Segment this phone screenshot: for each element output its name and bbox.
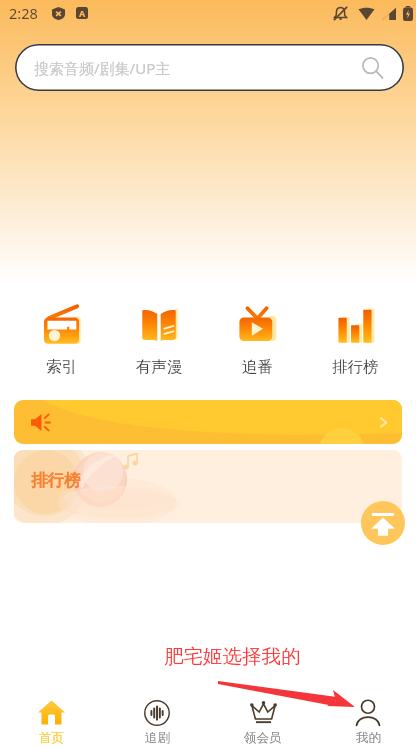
button[interactable]: Back to top bbox=[361, 501, 405, 545]
staticText: 首页 bbox=[39, 730, 64, 746]
staticText: 2:28 bbox=[9, 3, 38, 23]
staticText: 追剧 bbox=[145, 730, 170, 746]
staticText: 肥宅姬选择我的 bbox=[164, 644, 301, 669]
button[interactable]: 我的 bbox=[320, 697, 416, 746]
staticText: 有声漫 bbox=[136, 357, 183, 377]
staticText: 索引 bbox=[46, 357, 77, 377]
button[interactable]: 索引 bbox=[12, 302, 110, 377]
staticText: 排行榜 bbox=[31, 470, 81, 491]
button[interactable]: 搜索音频/剧集/UP主 bbox=[15, 44, 404, 91]
staticText: 领会员 bbox=[244, 730, 282, 746]
staticText: 追番 bbox=[242, 357, 273, 377]
button[interactable]: 首页 bbox=[3, 697, 99, 746]
button[interactable]: 追番 bbox=[208, 302, 306, 377]
staticText: A bbox=[79, 7, 86, 19]
staticText: 排行榜 bbox=[332, 357, 379, 377]
button[interactable]: 排行榜 bbox=[306, 302, 404, 377]
button[interactable] bbox=[14, 400, 402, 444]
staticText: 我的 bbox=[356, 730, 381, 746]
button[interactable]: 排行榜 bbox=[14, 450, 402, 523]
button[interactable]: 有声漫 bbox=[110, 302, 208, 377]
button[interactable]: 领会员 bbox=[215, 697, 311, 746]
staticText: 搜索音频/剧集/UP主 bbox=[34, 58, 171, 78]
button[interactable]: 追剧 bbox=[109, 697, 205, 746]
